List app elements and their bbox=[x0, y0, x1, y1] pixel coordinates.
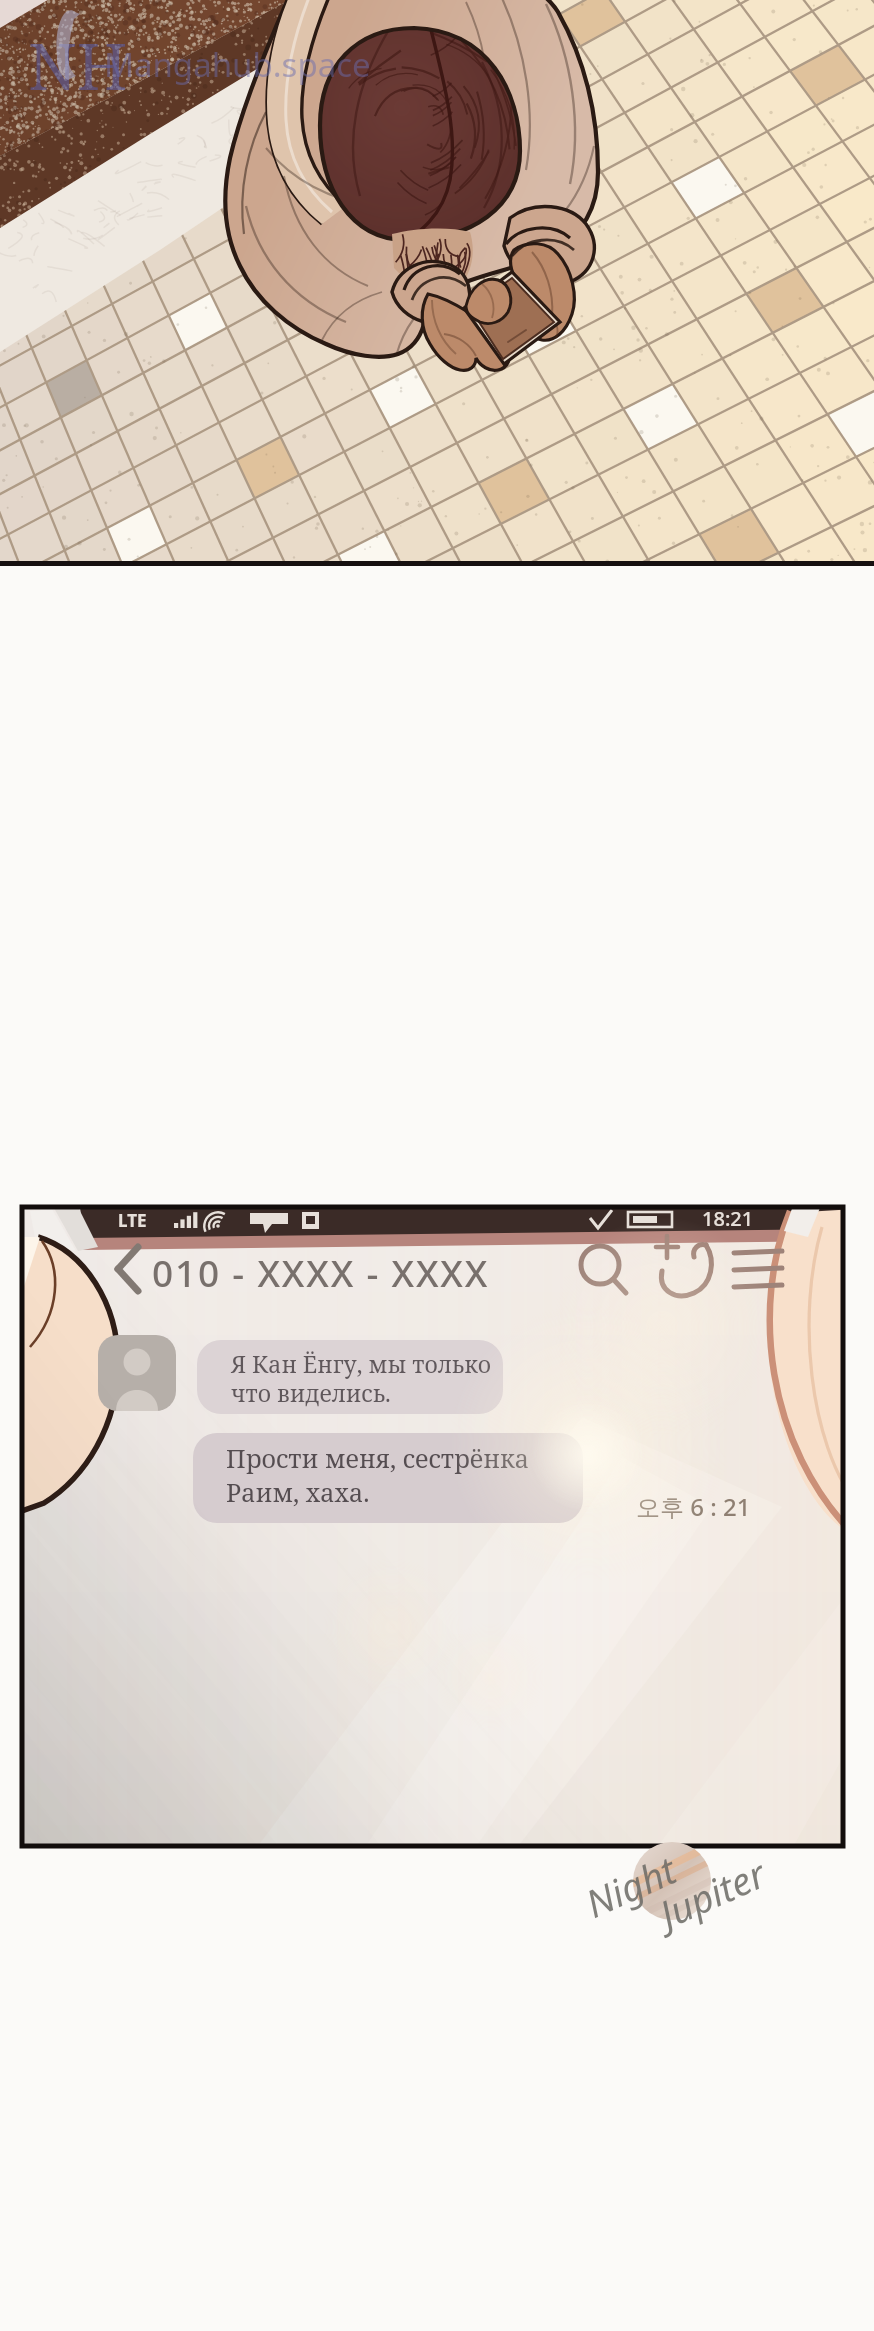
button[interactable]: Search bbox=[619, 1227, 683, 1291]
button[interactable]: Back bbox=[62, 1227, 126, 1291]
button[interactable]: Comic panel 1 bbox=[0, 0, 874, 566]
button[interactable]: Add call bbox=[683, 1227, 747, 1291]
button[interactable]: Comic panel 2 bbox=[22, 1207, 843, 1846]
button[interactable]: 010 - XXXX - XXXX bbox=[126, 1207, 619, 1311]
button[interactable]: Menu bbox=[747, 1227, 811, 1291]
